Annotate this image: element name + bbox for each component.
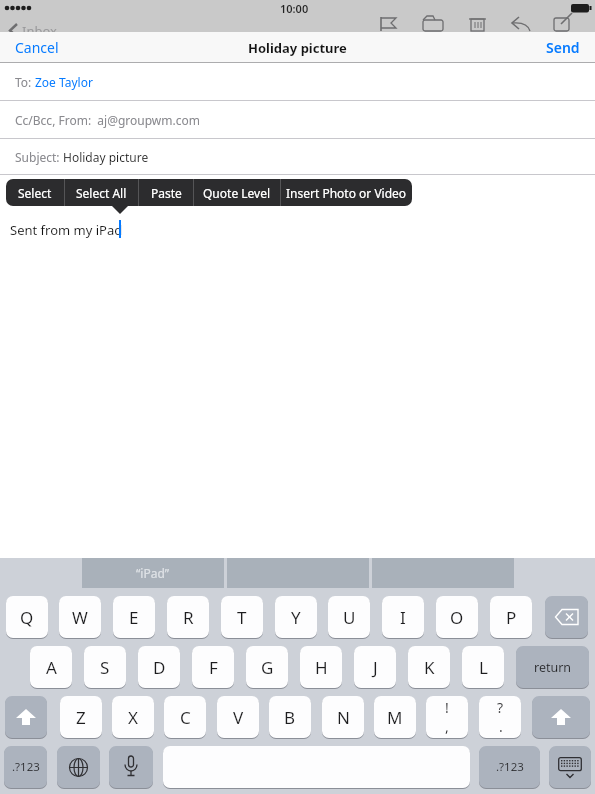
staticText: Z bbox=[76, 706, 86, 729]
button[interactable]: To: bbox=[0, 63, 595, 101]
staticText: S bbox=[100, 656, 110, 679]
staticText: P bbox=[506, 606, 517, 629]
staticText: .?123 bbox=[496, 759, 524, 775]
staticText: To: bbox=[15, 74, 35, 90]
staticText: Send bbox=[546, 38, 580, 57]
staticText: Sent from my iPad bbox=[10, 221, 123, 239]
staticText: O bbox=[450, 606, 464, 629]
staticText: ! bbox=[445, 698, 449, 717]
staticText: V bbox=[233, 706, 244, 729]
button[interactable]: Select All bbox=[65, 179, 138, 206]
button[interactable]: M bbox=[374, 696, 416, 738]
staticText: N bbox=[337, 706, 350, 729]
button[interactable]: N bbox=[322, 696, 364, 738]
staticText: Y bbox=[291, 606, 301, 629]
staticText: ? bbox=[497, 698, 504, 717]
staticText: R bbox=[183, 606, 194, 629]
staticText: Zoe Taylor bbox=[35, 74, 93, 90]
staticText: Insert Photo or Video bbox=[286, 185, 407, 201]
button[interactable]: H bbox=[300, 646, 342, 688]
button[interactable] bbox=[5, 696, 47, 738]
staticText: return bbox=[534, 659, 572, 676]
staticText: G bbox=[261, 656, 274, 679]
button[interactable]: V bbox=[217, 696, 259, 738]
button[interactable]: ! bbox=[426, 696, 468, 738]
staticText: Inbox bbox=[22, 22, 57, 40]
button[interactable]: Cc/Bcc, From: aj@groupwm.com bbox=[0, 101, 595, 139]
button[interactable]: Paste bbox=[139, 179, 193, 206]
button[interactable]: Z bbox=[60, 696, 102, 738]
button[interactable]: .?123 bbox=[479, 746, 540, 788]
staticText: U bbox=[343, 606, 356, 629]
button[interactable]: X bbox=[112, 696, 154, 738]
staticText: L bbox=[479, 656, 488, 679]
button[interactable]: Y bbox=[275, 596, 317, 638]
button[interactable]: Send bbox=[531, 38, 595, 57]
staticText: Select All bbox=[76, 185, 127, 201]
staticText: Select bbox=[18, 185, 52, 201]
button[interactable]: I bbox=[382, 596, 424, 638]
staticText: F bbox=[209, 656, 218, 679]
staticText: H bbox=[315, 656, 328, 679]
staticText: Holiday picture bbox=[248, 39, 347, 57]
button[interactable]: Q bbox=[6, 596, 48, 638]
staticText: W bbox=[72, 606, 88, 629]
button[interactable] bbox=[57, 746, 100, 788]
button[interactable] bbox=[545, 596, 588, 638]
button[interactable] bbox=[109, 746, 153, 788]
staticText: D bbox=[153, 656, 166, 679]
button[interactable]: P bbox=[490, 596, 532, 638]
staticText: . bbox=[499, 717, 503, 736]
button[interactable] bbox=[549, 746, 591, 788]
button[interactable]: return bbox=[516, 646, 589, 688]
button[interactable]: E bbox=[113, 596, 155, 638]
button[interactable]: S bbox=[84, 646, 126, 688]
staticText: K bbox=[424, 656, 435, 679]
staticText: E bbox=[129, 606, 139, 629]
button[interactable] bbox=[163, 746, 470, 788]
staticText: Q bbox=[20, 606, 34, 629]
button[interactable]: G bbox=[246, 646, 288, 688]
button[interactable]: B bbox=[269, 696, 311, 738]
button[interactable]: J bbox=[354, 646, 396, 688]
button[interactable]: “iPad” bbox=[82, 558, 224, 588]
staticText: Cancel bbox=[15, 38, 59, 57]
staticText: , bbox=[445, 717, 449, 736]
button[interactable]: Select bbox=[6, 179, 64, 206]
button[interactable]: W bbox=[59, 596, 101, 638]
button[interactable]: O bbox=[436, 596, 478, 638]
staticText: B bbox=[284, 706, 296, 729]
button[interactable] bbox=[532, 696, 590, 738]
staticText: I bbox=[400, 606, 406, 629]
button[interactable]: Insert Photo or Video bbox=[281, 179, 412, 206]
button[interactable]: Subject: bbox=[0, 139, 595, 175]
staticText: Paste bbox=[151, 185, 182, 201]
staticText: J bbox=[373, 656, 378, 679]
button[interactable]: A bbox=[30, 646, 72, 688]
button[interactable]: L bbox=[462, 646, 504, 688]
staticText: A bbox=[46, 656, 57, 679]
staticText: Holiday picture bbox=[63, 149, 149, 165]
button[interactable]: C bbox=[164, 696, 206, 738]
staticText: Cc/Bcc, From: aj@groupwm.com bbox=[15, 112, 200, 128]
staticText: 10:00 bbox=[280, 1, 309, 16]
staticText: C bbox=[180, 706, 191, 729]
button[interactable]: Quote Level bbox=[194, 179, 280, 206]
staticText: Quote Level bbox=[203, 185, 271, 201]
button[interactable]: R bbox=[167, 596, 209, 638]
staticText: “iPad” bbox=[136, 565, 170, 581]
button[interactable]: .?123 bbox=[4, 746, 47, 788]
button[interactable]: F bbox=[192, 646, 234, 688]
button[interactable]: K bbox=[408, 646, 450, 688]
staticText: M bbox=[387, 706, 403, 729]
button[interactable]: U bbox=[328, 596, 370, 638]
button[interactable]: D bbox=[138, 646, 180, 688]
staticText: T bbox=[237, 606, 247, 629]
button[interactable]: Cancel bbox=[0, 38, 74, 57]
staticText: Subject: bbox=[15, 149, 63, 165]
button[interactable]: T bbox=[221, 596, 263, 638]
staticText: .?123 bbox=[12, 759, 40, 775]
button[interactable]: ? bbox=[479, 696, 521, 738]
